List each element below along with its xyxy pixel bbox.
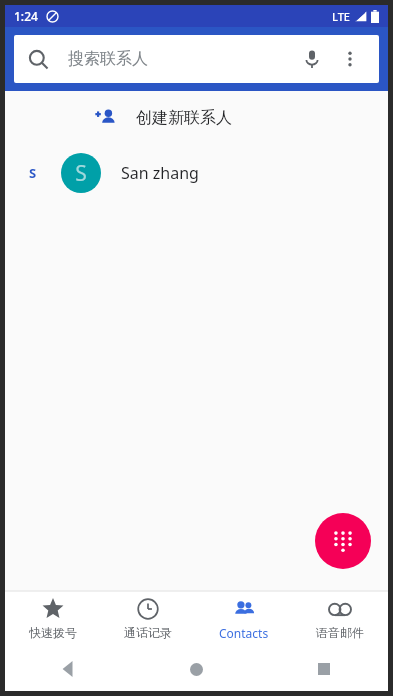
- button[interactable]: Back: [5, 647, 132, 691]
- button[interactable]: Voice search: [297, 44, 327, 74]
- staticText: Contacts: [219, 625, 269, 641]
- button[interactable]: 通话记录: [100, 591, 196, 647]
- button[interactable]: S: [5, 145, 388, 201]
- staticText: LTE: [332, 9, 350, 24]
- staticText: 语音邮件: [316, 625, 364, 640]
- staticText: S: [29, 164, 37, 182]
- staticText: 搜索联系人: [68, 49, 148, 69]
- button[interactable]: Dialpad: [315, 513, 371, 569]
- button[interactable]: 语音邮件: [292, 591, 388, 647]
- button[interactable]: 创建新联系人: [5, 91, 388, 145]
- button[interactable]: Recents: [260, 647, 388, 691]
- staticText: 1:24: [14, 8, 38, 24]
- button[interactable]: 快速拨号: [5, 591, 100, 647]
- button[interactable]: Home: [132, 647, 260, 691]
- staticText: San zhang: [121, 162, 199, 184]
- button[interactable]: 搜索联系人: [14, 35, 379, 83]
- staticText: 通话记录: [124, 625, 172, 640]
- staticText: 创建新联系人: [136, 108, 232, 128]
- button[interactable]: More options: [335, 44, 365, 74]
- button[interactable]: Contacts: [196, 591, 292, 647]
- staticText: 快速拨号: [29, 625, 77, 640]
- staticText: S: [75, 159, 87, 188]
